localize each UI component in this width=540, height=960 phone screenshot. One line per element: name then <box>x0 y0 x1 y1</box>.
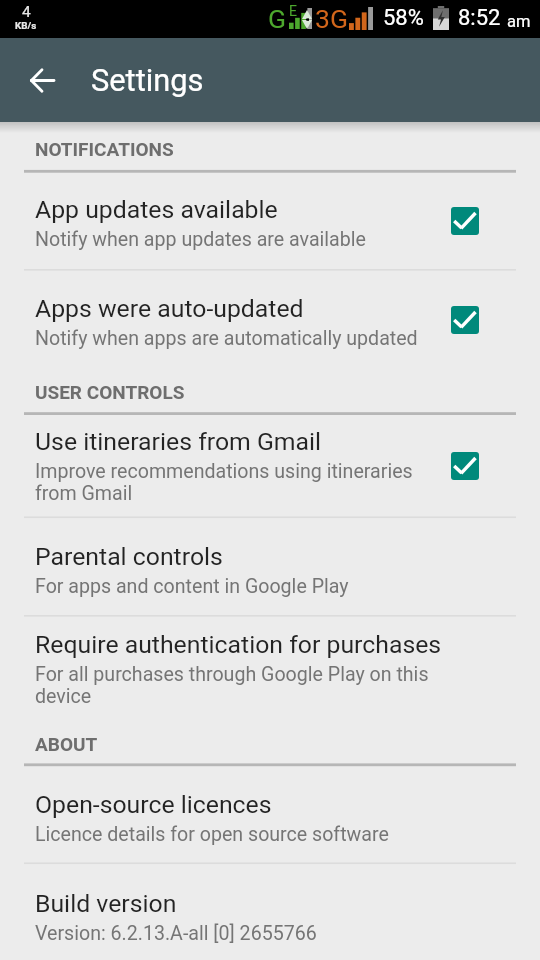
staticText: Open-source licences <box>35 790 447 819</box>
staticText: 58% <box>383 5 424 31</box>
staticText: App updates available <box>35 195 447 224</box>
staticText: Licence details for open source software <box>35 823 447 846</box>
button[interactable]: Build version <box>0 865 540 960</box>
staticText: For apps and content in Google Play <box>35 575 447 598</box>
staticText: 4 <box>22 3 31 21</box>
button[interactable]: Parental controls <box>0 518 540 617</box>
staticText: NOTIFICATIONS <box>35 138 174 160</box>
staticText: G <box>268 3 287 34</box>
button[interactable]: Require authentication for purchases <box>0 617 540 721</box>
staticText: 8:52 <box>458 5 501 31</box>
staticText: KB/s <box>15 20 37 31</box>
staticText: USER CONTROLS <box>35 381 185 403</box>
staticText: Apps were auto-updated <box>35 294 447 323</box>
staticText: For all purchases through Google Play on… <box>35 663 447 708</box>
staticText: Notify when app updates are available <box>35 228 447 251</box>
button[interactable]: Use itineraries from Gmail <box>0 414 540 518</box>
button[interactable]: Apps were auto-updated <box>442 297 488 343</box>
staticText: Build version <box>35 889 447 918</box>
staticText: Notify when apps are automatically updat… <box>35 327 447 350</box>
staticText: Improve recommendations using itinerarie… <box>35 460 447 505</box>
button[interactable]: Navigate up <box>19 57 66 104</box>
staticText: Version: 6.2.13.A-all [0] 2655766 <box>35 922 447 945</box>
button[interactable]: Use itineraries from Gmail <box>442 443 488 489</box>
staticText: 3G <box>315 3 348 34</box>
staticText: Parental controls <box>35 542 447 571</box>
staticText: Settings <box>91 62 204 98</box>
button[interactable]: Apps were auto-updated <box>0 270 540 369</box>
staticText: E <box>289 3 297 19</box>
button[interactable]: App updates available <box>0 171 540 270</box>
staticText: Use itineraries from Gmail <box>35 427 447 456</box>
button[interactable]: Open-source licences <box>0 766 540 865</box>
staticText: Require authentication for purchases <box>35 630 447 659</box>
staticText: am <box>507 12 531 31</box>
staticText: ABOUT <box>35 733 98 755</box>
button[interactable]: App updates available <box>442 198 488 244</box>
